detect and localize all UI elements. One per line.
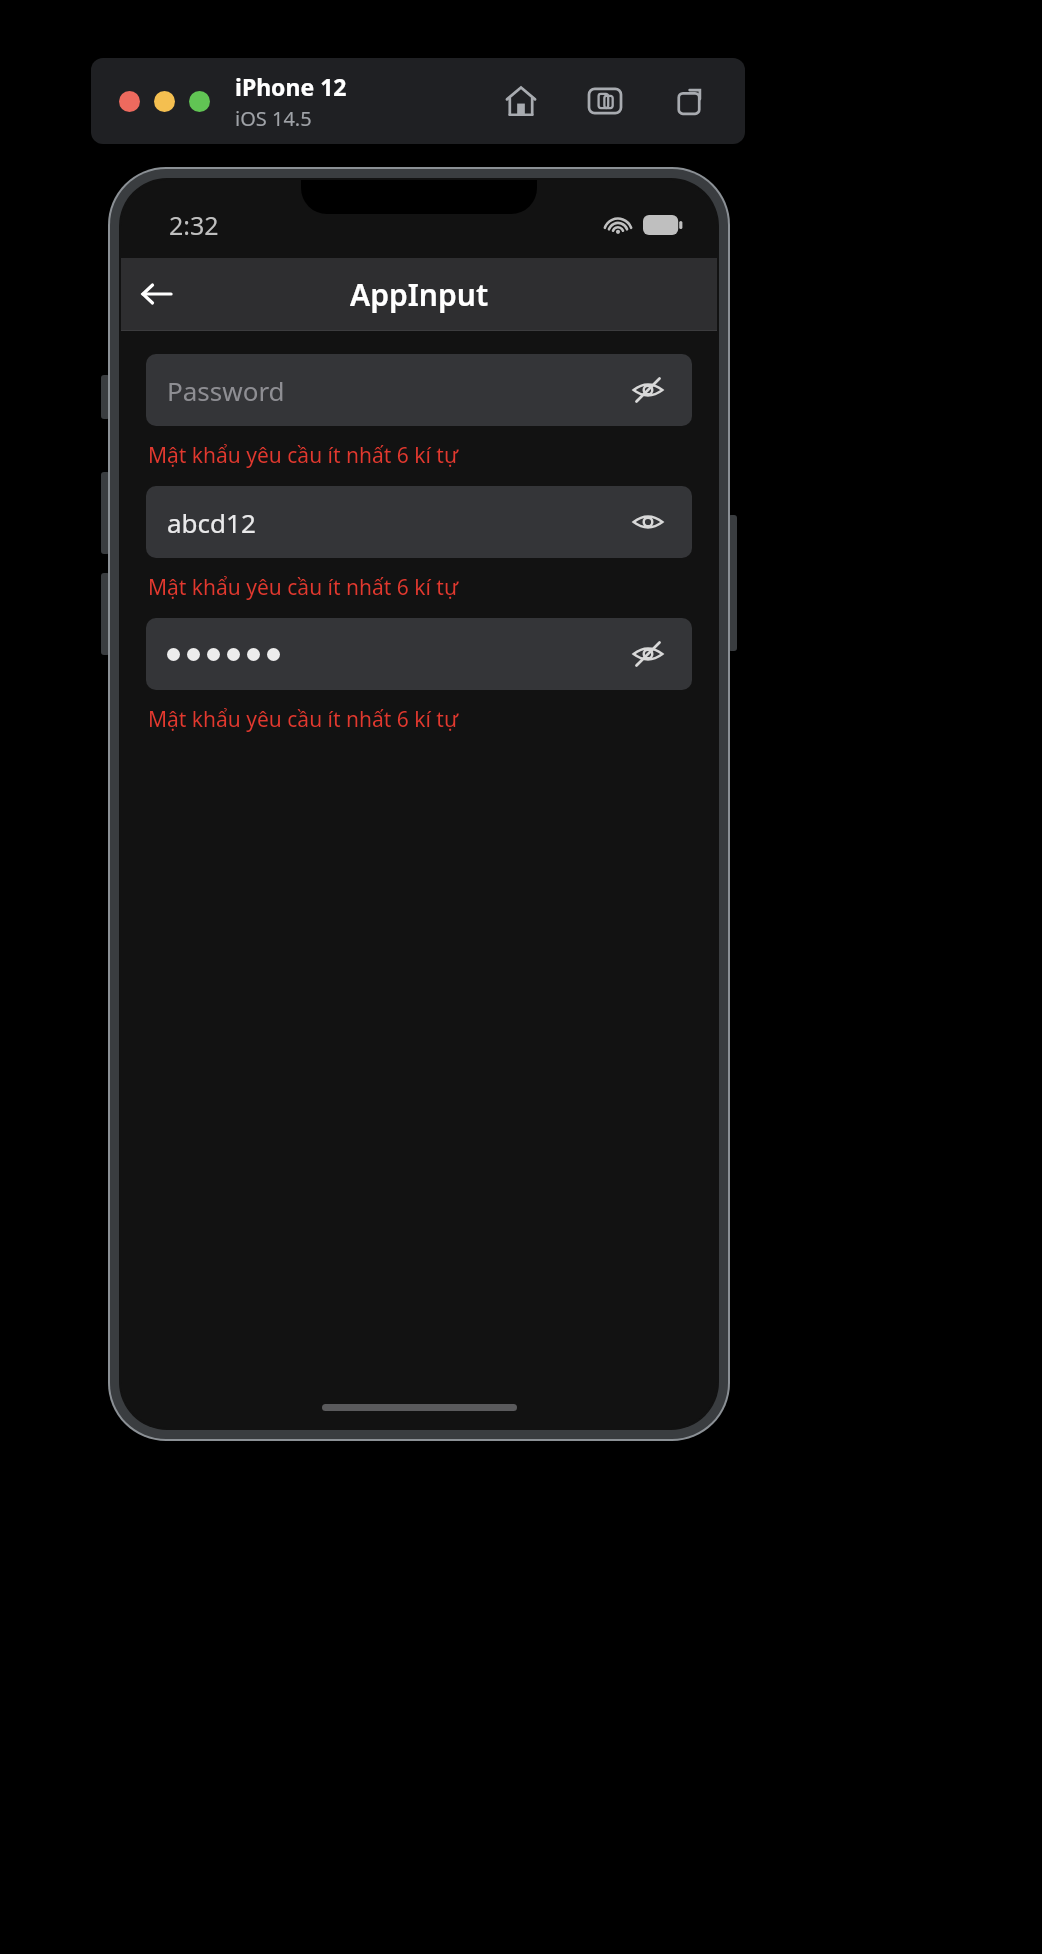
staticText: AppInput bbox=[350, 274, 489, 315]
button[interactable]: Maximise bbox=[189, 91, 210, 112]
staticText: iOS 14.5 bbox=[235, 105, 312, 132]
button[interactable]: Minimise bbox=[154, 91, 175, 112]
button[interactable]: Show password bbox=[146, 618, 692, 690]
staticText: Mật khẩu yêu cầu ít nhất 6 kí tự bbox=[148, 441, 459, 470]
button[interactable]: Hide password bbox=[625, 499, 671, 545]
staticText: Password bbox=[167, 373, 285, 408]
staticText: 2:32 bbox=[169, 208, 219, 242]
button[interactable]: Close bbox=[119, 91, 140, 112]
staticText: abcd12 bbox=[167, 505, 256, 540]
button[interactable]: Rotate bbox=[667, 79, 711, 123]
button[interactable]: abcd12 bbox=[146, 486, 692, 558]
staticText: Mật khẩu yêu cầu ít nhất 6 kí tự bbox=[148, 573, 459, 602]
button[interactable]: Show password bbox=[625, 631, 671, 677]
button[interactable]: Back bbox=[121, 258, 193, 330]
staticText: iPhone 12 bbox=[235, 71, 347, 102]
button[interactable]: Home bbox=[499, 79, 543, 123]
staticText: Mật khẩu yêu cầu ít nhất 6 kí tự bbox=[148, 705, 459, 734]
button[interactable]: Show password bbox=[625, 367, 671, 413]
button[interactable]: Screenshot bbox=[583, 79, 627, 123]
button[interactable]: Password bbox=[146, 354, 692, 426]
